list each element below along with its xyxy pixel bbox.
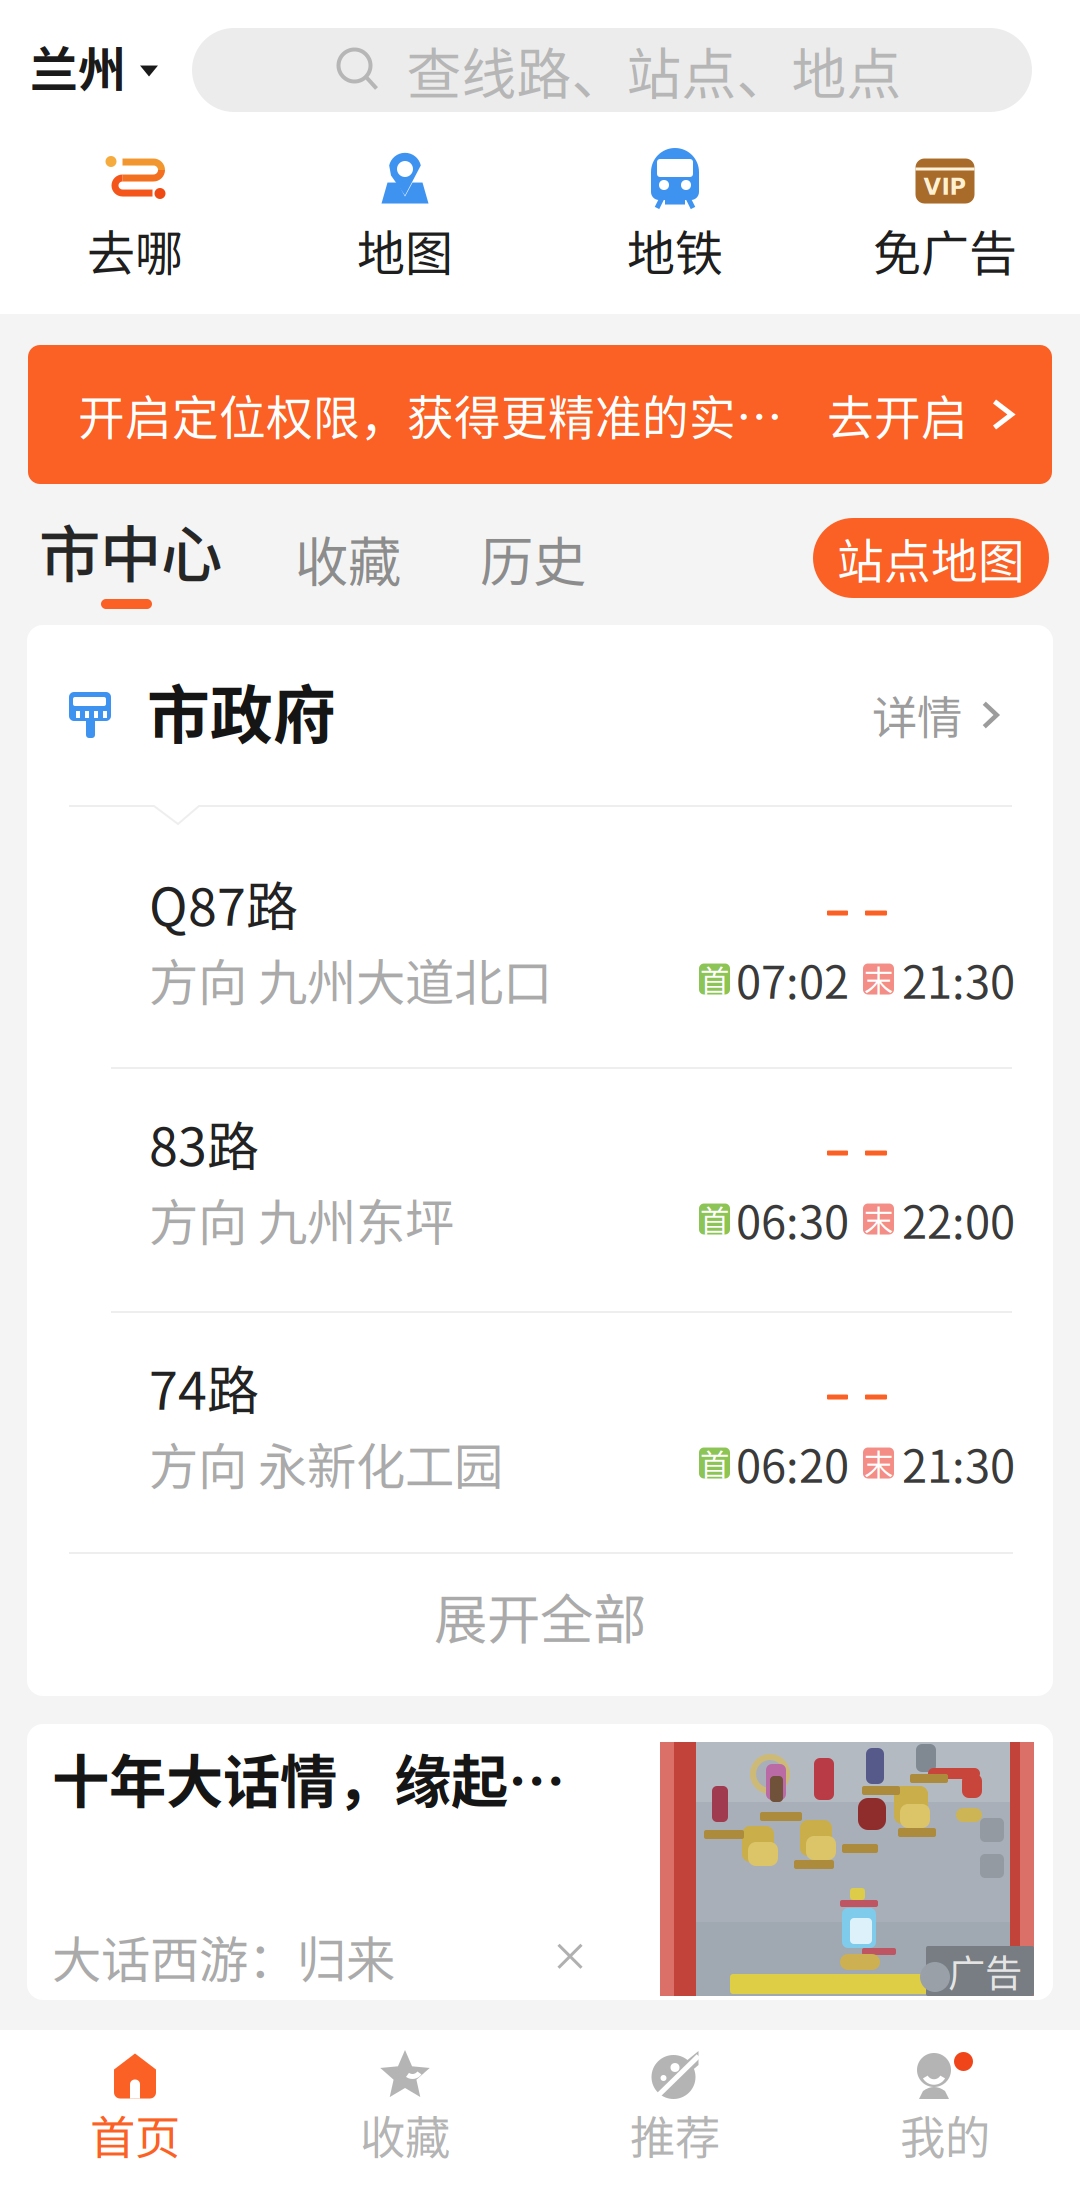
staticText: 市政府 bbox=[147, 665, 336, 756]
button[interactable]: 历史 bbox=[401, 520, 586, 625]
staticText: 广告 bbox=[948, 1944, 1022, 1998]
button[interactable]: Q87路 bbox=[27, 829, 1053, 1067]
staticText: 首 bbox=[700, 1442, 729, 1484]
staticText: 地图 bbox=[357, 215, 453, 284]
button[interactable]: 74路 bbox=[27, 1313, 1053, 1552]
staticText: 收藏 bbox=[295, 520, 401, 597]
button[interactable]: 83路 bbox=[27, 1069, 1053, 1311]
staticText: 06:30 bbox=[736, 1186, 849, 1252]
staticText: 收藏 bbox=[360, 2102, 450, 2168]
staticText: 历史 bbox=[480, 520, 586, 597]
staticText: Q87路 bbox=[149, 865, 298, 941]
button[interactable]: 市中心 bbox=[0, 506, 222, 625]
button[interactable]: 兰州 bbox=[0, 0, 158, 140]
staticText: 兰州 bbox=[30, 31, 126, 101]
staticText: 方向 永新化工园 bbox=[149, 1427, 503, 1499]
staticText: 大话西游：归来 bbox=[52, 1921, 395, 1992]
staticText: 站点地图 bbox=[837, 524, 1025, 592]
button[interactable]: 地铁 bbox=[540, 140, 810, 314]
staticText: 方向 九州东坪 bbox=[149, 1183, 454, 1255]
staticText: 地铁 bbox=[627, 215, 723, 284]
staticText: 市中心 bbox=[39, 506, 222, 595]
button[interactable]: 去哪 bbox=[0, 140, 270, 314]
staticText: 我的 bbox=[900, 2102, 990, 2168]
button[interactable]: 推荐 bbox=[540, 2030, 810, 2187]
staticText: 首 bbox=[700, 1198, 729, 1240]
button[interactable]: 展开全部 bbox=[27, 1554, 1053, 1696]
staticText: 展开全部 bbox=[434, 1577, 646, 1655]
staticText: 首 bbox=[700, 958, 729, 1000]
staticText: 83路 bbox=[149, 1105, 259, 1181]
button[interactable]: 我的 bbox=[810, 2030, 1080, 2187]
staticText: 21:30 bbox=[902, 946, 1015, 1012]
button[interactable]: 站点地图 bbox=[813, 518, 1049, 598]
staticText: 22:00 bbox=[902, 1186, 1015, 1252]
staticText: VIP bbox=[923, 174, 966, 200]
staticText: 查线路、站点、地点 bbox=[406, 30, 901, 110]
staticText: 方向 九州大道北口 bbox=[149, 943, 552, 1015]
button[interactable]: 首页 bbox=[0, 2030, 270, 2187]
staticText: 推荐 bbox=[630, 2102, 720, 2168]
staticText: 去哪 bbox=[87, 215, 183, 284]
button[interactable]: 十年大话情，缘起… bbox=[27, 1724, 1053, 2000]
staticText: 末 bbox=[864, 958, 893, 1000]
button[interactable]: 收藏 bbox=[222, 520, 401, 625]
button[interactable]: 市政府 bbox=[27, 625, 1053, 805]
staticText: 首页 bbox=[90, 2102, 180, 2168]
staticText: 末 bbox=[864, 1442, 893, 1484]
button[interactable]: 查线路、站点、地点 bbox=[192, 28, 1032, 112]
staticText: 74路 bbox=[149, 1349, 259, 1425]
staticText: 免广告 bbox=[873, 215, 1017, 284]
button[interactable]: 开启定位权限，获得更精准的实… bbox=[28, 345, 1052, 484]
staticText: 06:20 bbox=[736, 1430, 849, 1496]
staticText: 详情 bbox=[872, 682, 962, 748]
staticText: 十年大话情，缘起… bbox=[52, 1736, 565, 1819]
staticText: 开启定位权限，获得更精准的实… bbox=[78, 381, 783, 448]
staticText: 21:30 bbox=[902, 1430, 1015, 1496]
button[interactable]: 关闭广告 bbox=[540, 1926, 600, 1986]
button[interactable]: 收藏 bbox=[270, 2030, 540, 2187]
button[interactable]: 地图 bbox=[270, 140, 540, 314]
staticText: 去开启 bbox=[827, 381, 968, 448]
staticText: 07:02 bbox=[736, 946, 849, 1012]
staticText: 末 bbox=[864, 1198, 893, 1240]
button[interactable]: VIP bbox=[810, 140, 1080, 314]
